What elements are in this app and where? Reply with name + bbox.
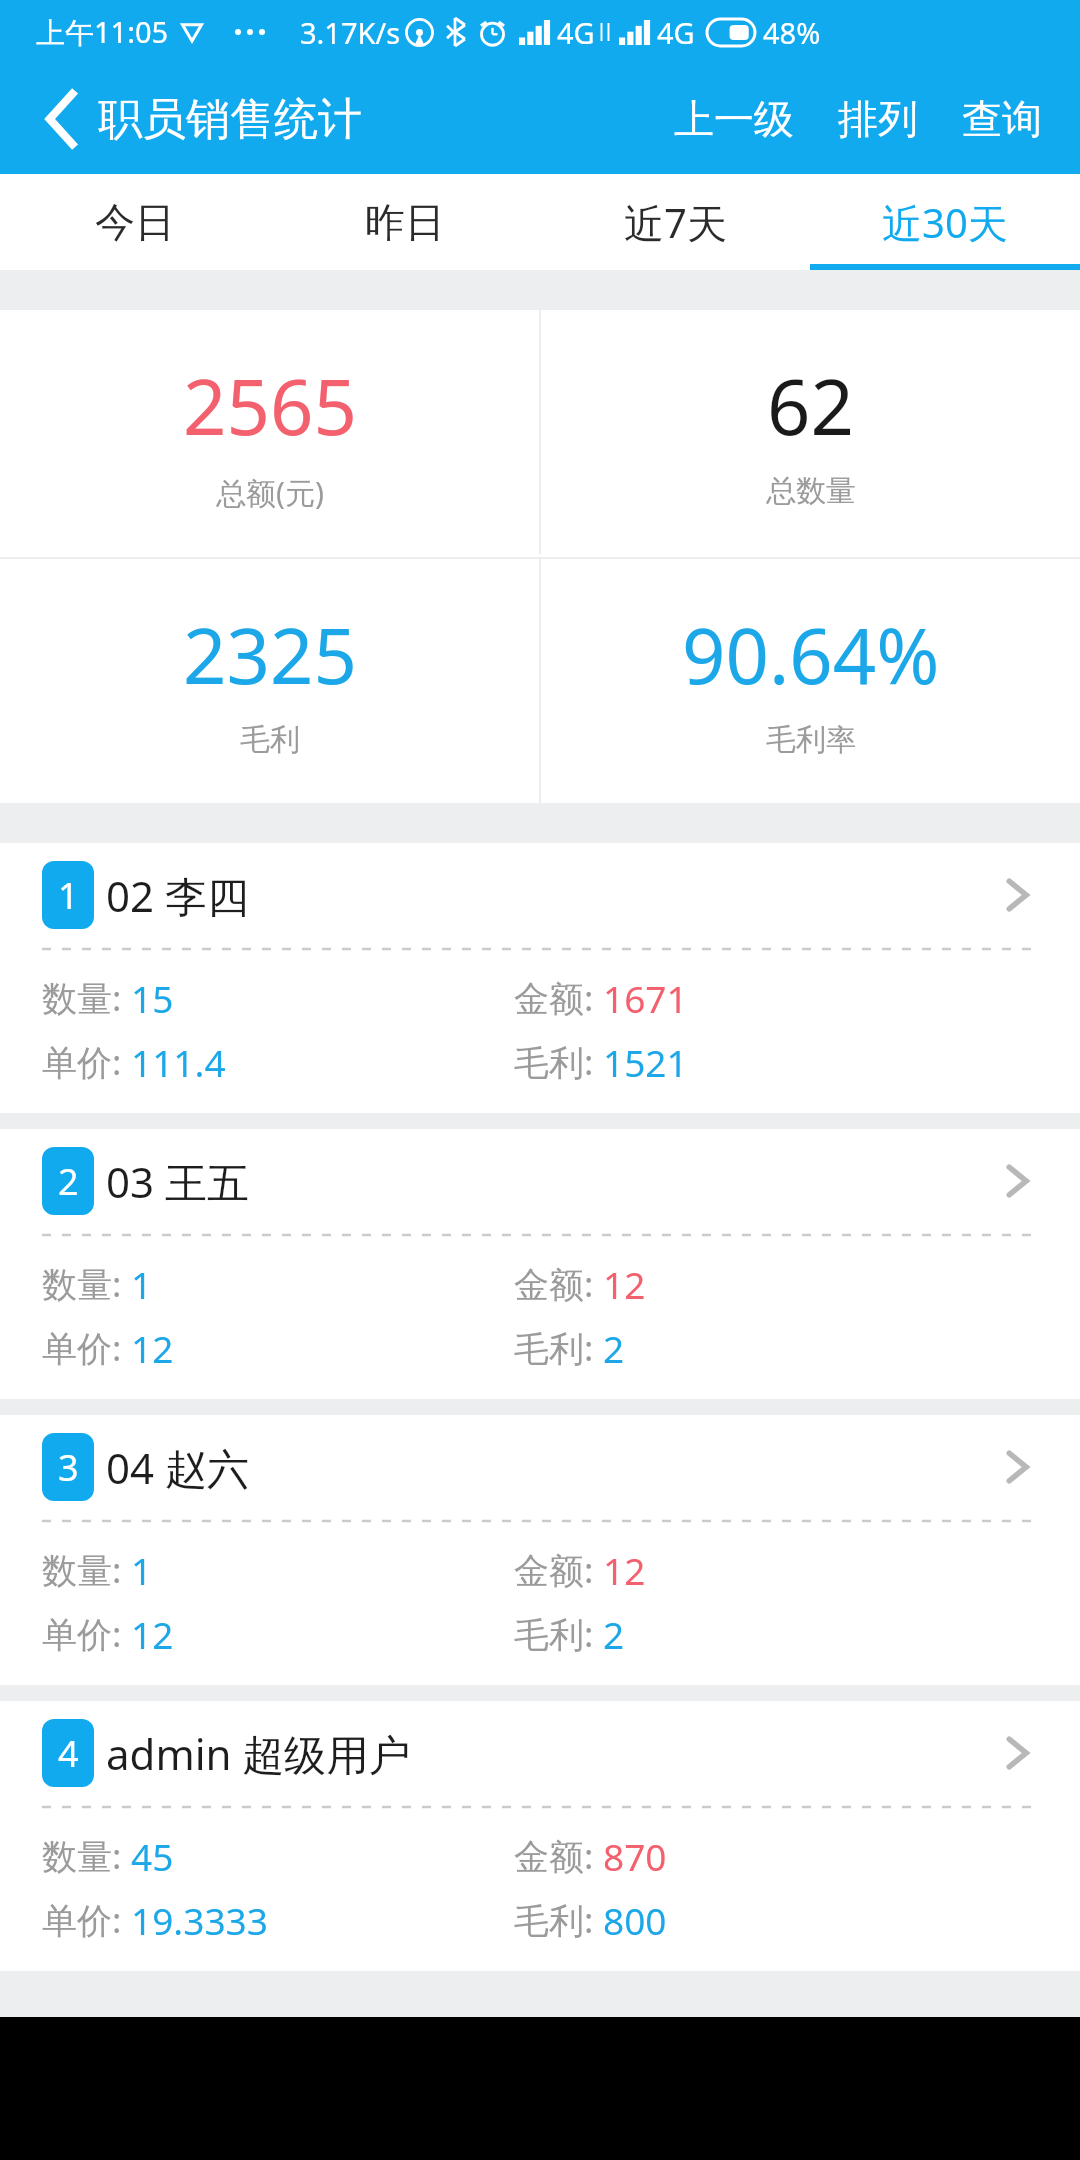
button[interactable]: 2 [0,1129,1080,1399]
staticText: 1671 [603,973,688,1023]
button[interactable]: 2325 [0,559,539,803]
staticText: 上一级 [674,94,794,144]
staticText: 12 [131,1323,174,1373]
staticText: 3.17K/s [300,13,401,52]
staticText: 金额: [514,1546,603,1594]
staticText: 毛利: [514,1896,603,1944]
staticText: 近7天 [624,195,727,250]
staticText: 2 [603,1609,625,1659]
staticText: 数量: [42,1546,131,1594]
staticText: 2325 [183,603,357,707]
staticText: 毛利率 [766,721,856,759]
staticText: 单价: [42,1324,131,1372]
staticText: 职员销售统计 [98,92,362,147]
staticText: 单价: [42,1038,131,1086]
staticText: 19.3333 [131,1895,268,1945]
staticText: 04 赵六 [106,1439,249,1496]
staticText: 1521 [603,1037,688,1087]
other: Open details [994,1730,1040,1776]
staticText: 02 李四 [106,867,249,924]
button[interactable]: 4 [0,1701,1080,1971]
staticText: 数量: [42,1832,131,1880]
button[interactable]: 62 [541,310,1080,554]
staticText: 金额: [514,974,603,1022]
staticText: 800 [603,1895,667,1945]
staticText: 4G [557,13,595,52]
staticText: 15 [131,973,174,1023]
button[interactable]: 1 [0,843,1080,1113]
button[interactable]: Back [0,64,372,174]
staticText: 1 [58,871,79,920]
staticText: 总额(元) [216,472,324,513]
staticText: 3 [58,1443,79,1492]
staticText: 金额: [514,1832,603,1880]
staticText: 2565 [183,354,357,458]
staticText: 111.4 [131,1037,226,1087]
staticText: 数量: [42,974,131,1022]
staticText: 1 [131,1545,153,1595]
staticText: 毛利: [514,1324,603,1372]
other: Open details [994,872,1040,918]
staticText: 总数量 [766,472,856,510]
staticText: 昨日 [365,197,445,247]
staticText: 排列 [838,94,918,144]
button[interactable]: 90.64% [541,559,1080,803]
button[interactable]: 近7天 [540,174,810,270]
staticText: 1 [131,1259,153,1309]
staticText: 03 王五 [106,1153,249,1210]
staticText: 上午11:05 [36,12,169,52]
staticText: admin 超级用户 [106,1725,411,1782]
staticText: 查询 [962,94,1042,144]
button[interactable]: 近30天 [810,174,1080,270]
staticText: 2 [603,1323,625,1373]
staticText: 数量: [42,1260,131,1308]
button[interactable]: 上一级 [652,64,816,174]
staticText: 今日 [95,197,175,247]
staticText: 48% [763,13,821,52]
staticText: 近30天 [882,195,1008,250]
other: Open details [994,1444,1040,1490]
button[interactable]: 查询 [940,64,1064,174]
other: Open details [994,1158,1040,1204]
staticText: 金额: [514,1260,603,1308]
button[interactable]: 2565 [0,310,539,557]
staticText: 毛利 [240,721,300,759]
staticText: 45 [131,1831,174,1881]
staticText: 毛利: [514,1038,603,1086]
staticText: 单价: [42,1896,131,1944]
staticText: 2 [58,1157,79,1206]
staticText: 4G [657,13,695,52]
staticText: 单价: [42,1610,131,1658]
staticText: 90.64% [682,603,940,707]
staticText: 12 [603,1545,646,1595]
button[interactable]: 昨日 [270,174,540,270]
button[interactable]: 排列 [816,64,940,174]
staticText: 毛利: [514,1610,603,1658]
staticText: 12 [603,1259,646,1309]
staticText: 4 [58,1729,79,1778]
button[interactable]: 3 [0,1415,1080,1685]
staticText: 62 [767,354,854,458]
button[interactable]: 今日 [0,174,270,270]
staticText: 870 [603,1831,667,1881]
staticText: 12 [131,1609,174,1659]
